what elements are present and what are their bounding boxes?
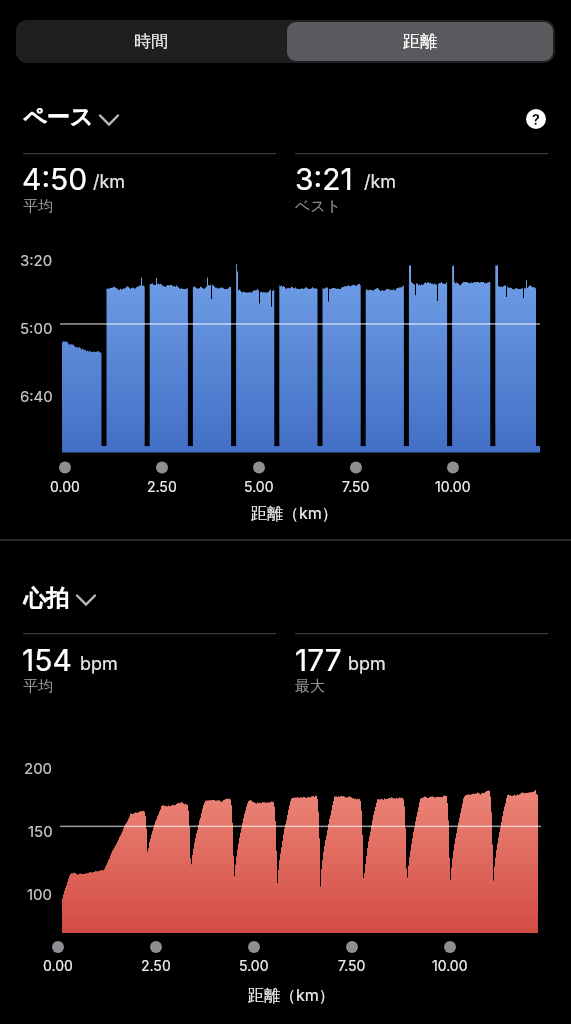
staticText: 平均 [23, 197, 53, 216]
staticText: ベスト [295, 197, 342, 216]
staticText: 150 [28, 822, 53, 840]
staticText: 距離（km） [248, 985, 335, 1005]
staticText: 平均 [23, 677, 53, 696]
staticText: 最大 [295, 677, 325, 696]
staticText: 2.50 [141, 957, 171, 974]
staticText: 0.00 [50, 478, 80, 495]
staticText: 5:00 [20, 319, 53, 337]
button[interactable]: ? [526, 109, 546, 129]
staticText: 3:20 [20, 251, 53, 269]
staticText: 6:40 [20, 387, 53, 405]
staticText: 10.00 [435, 478, 471, 495]
staticText: bpm [80, 653, 118, 675]
staticText: 距離（km） [251, 503, 338, 523]
staticText: 3:21 [295, 161, 353, 197]
staticText: 200 [24, 759, 53, 777]
staticText: 7.50 [338, 957, 366, 974]
staticText: 2.50 [147, 478, 177, 495]
staticText: bpm [348, 653, 386, 675]
button[interactable]: 距離 [287, 22, 553, 61]
staticText: 心拍 [23, 584, 69, 613]
staticText: ? [532, 111, 540, 128]
staticText: 0.00 [43, 957, 73, 974]
staticText: /km [93, 171, 126, 193]
staticText: /km [364, 171, 397, 193]
staticText: 5.00 [244, 478, 274, 495]
button[interactable] [16, 578, 106, 618]
staticText: 154 [22, 642, 72, 678]
button[interactable]: 時間 [16, 20, 285, 63]
staticText: 5.00 [239, 957, 269, 974]
staticText: ペース [23, 103, 94, 132]
staticText: 7.50 [342, 478, 370, 495]
staticText: 時間 [134, 31, 168, 52]
staticText: 177 [295, 642, 342, 678]
staticText: 100 [27, 885, 53, 903]
staticText: 4:50 [22, 161, 88, 197]
staticText: 距離 [403, 31, 437, 52]
staticText: 10.00 [432, 957, 468, 974]
button[interactable] [16, 98, 126, 138]
